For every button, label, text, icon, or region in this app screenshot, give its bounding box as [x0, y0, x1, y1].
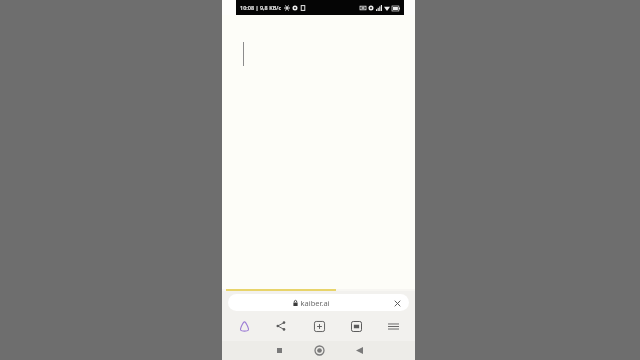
button[interactable]: Tab switcher — [341, 316, 371, 336]
button[interactable]: Stop loading — [390, 296, 404, 310]
button[interactable]: Share — [266, 316, 296, 336]
staticText: 10:08 | 9,8 KB/c — [240, 4, 282, 11]
button[interactable]: Recents — [267, 341, 291, 360]
button[interactable]: New tab — [304, 316, 334, 336]
button[interactable]: Home — [229, 316, 259, 336]
staticText: kaiber.ai — [300, 298, 330, 308]
button[interactable]: Menu — [378, 316, 408, 336]
button[interactable]: Back — [347, 341, 371, 360]
button[interactable]: Home — [307, 341, 331, 360]
button[interactable]: kaiber.ai — [228, 294, 409, 311]
